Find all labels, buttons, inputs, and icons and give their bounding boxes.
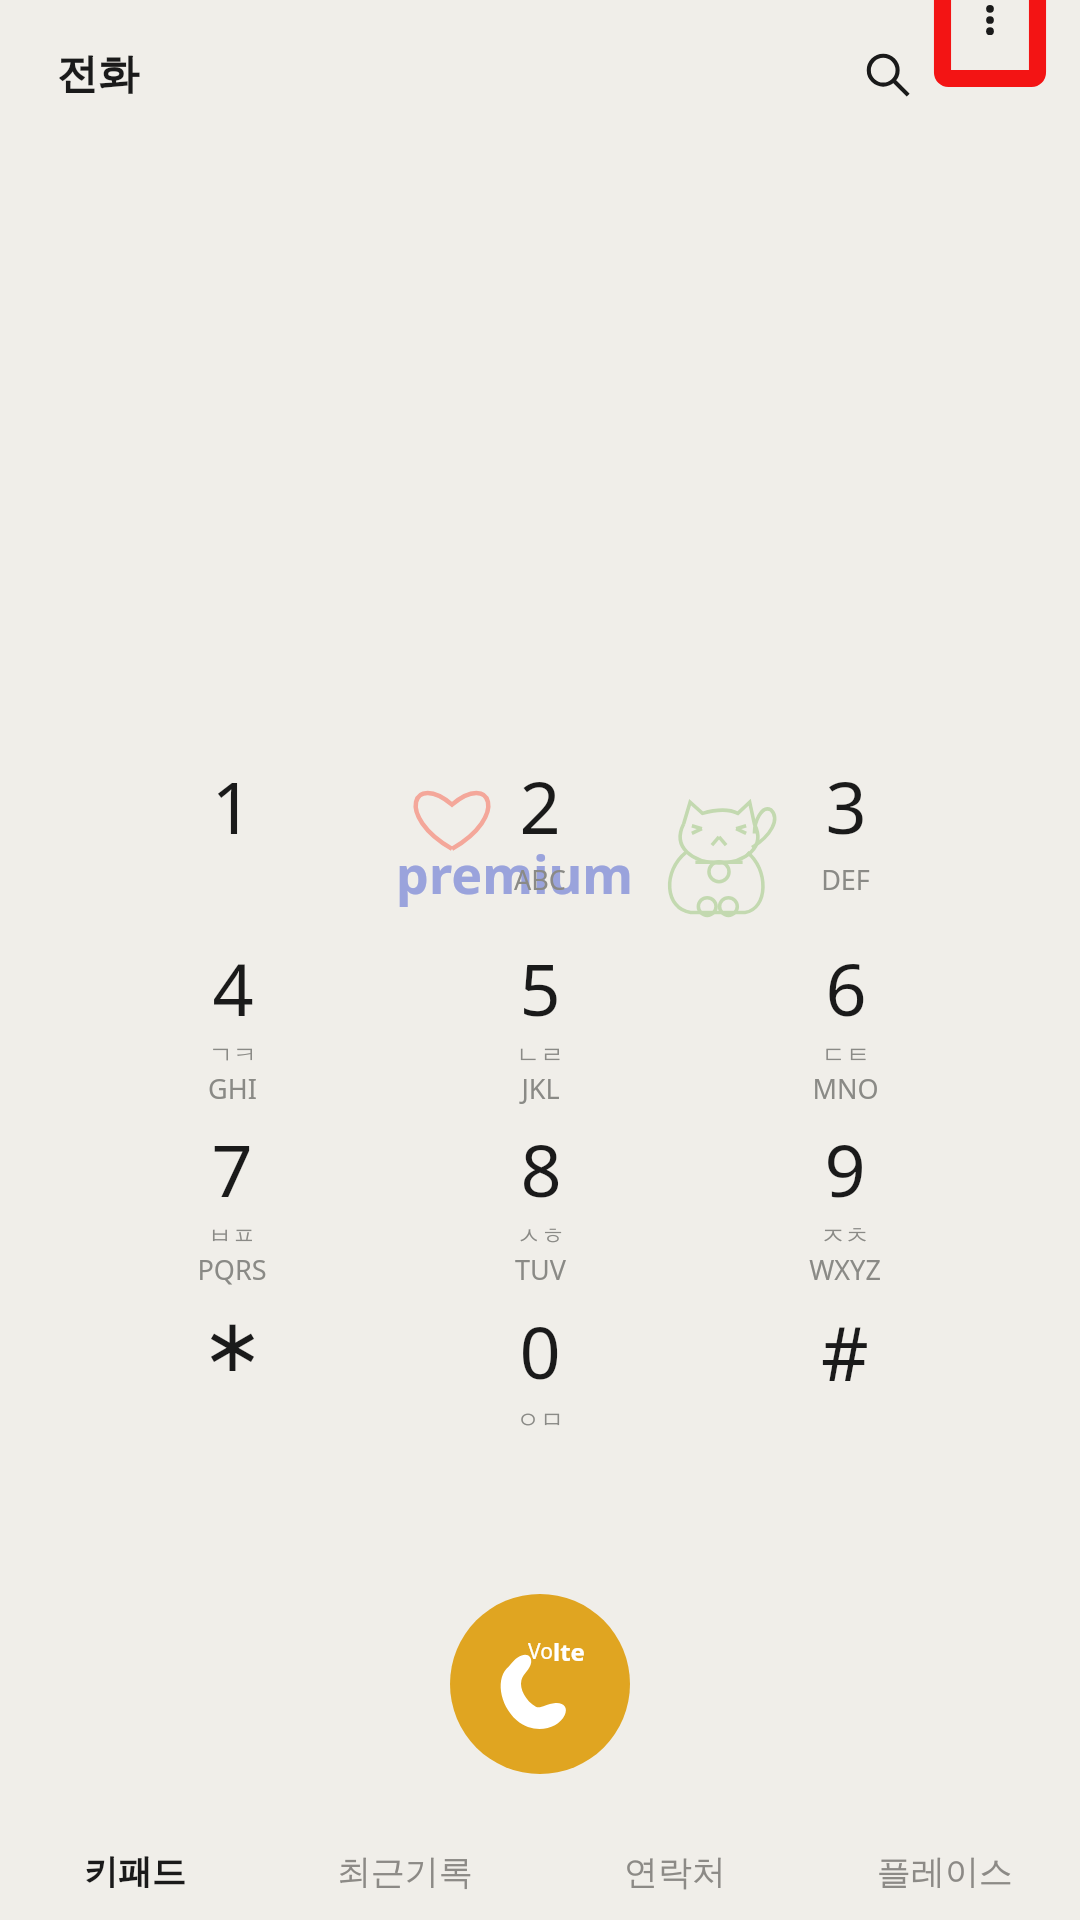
staticText: 2 — [519, 757, 561, 855]
staticText: ABC — [514, 861, 566, 898]
staticText: 최근기록 — [337, 1851, 473, 1894]
staticText: 전화 — [57, 49, 139, 101]
staticText: 3 — [825, 757, 867, 855]
staticText: ㄷㅌ — [822, 1040, 870, 1070]
staticText: lte — [553, 1635, 585, 1668]
staticText: 연락처 — [624, 1851, 726, 1894]
button[interactable]: 2 — [390, 757, 690, 933]
staticText: premium — [396, 838, 633, 909]
staticText: ㅂㅍ — [208, 1221, 256, 1251]
staticText: ㅈㅊ — [821, 1221, 869, 1251]
staticText: GHI — [208, 1070, 257, 1107]
staticText: # — [821, 1302, 869, 1403]
button[interactable]: 플레이스 — [810, 1825, 1080, 1920]
button[interactable]: 4 — [82, 939, 382, 1115]
button[interactable]: ∗ — [82, 1302, 382, 1478]
staticText: TUV — [515, 1251, 566, 1288]
button[interactable]: Search — [846, 33, 930, 117]
button[interactable]: 1 — [82, 757, 382, 933]
staticText: 4 — [212, 939, 254, 1037]
button[interactable]: 0 — [390, 1302, 690, 1478]
button[interactable]: Call — [450, 1594, 630, 1774]
staticText: 1 — [211, 757, 253, 855]
button[interactable]: 3 — [695, 757, 995, 933]
button[interactable]: 9 — [695, 1120, 995, 1296]
staticText: 0 — [519, 1302, 561, 1400]
staticText: 키패드 — [84, 1851, 186, 1894]
staticText: ㅅㅎ — [517, 1221, 565, 1251]
button[interactable]: 7 — [82, 1120, 382, 1296]
button[interactable]: 연락처 — [540, 1825, 810, 1920]
staticText: ㄱㅋ — [209, 1040, 257, 1070]
staticText: Vo — [528, 1637, 553, 1666]
staticText: MNO — [812, 1070, 879, 1107]
button[interactable]: # — [695, 1302, 995, 1478]
button[interactable]: 5 — [390, 939, 690, 1115]
button[interactable]: 최근기록 — [270, 1825, 540, 1920]
staticText: 7 — [211, 1120, 253, 1218]
staticText: JKL — [521, 1070, 560, 1107]
staticText: 9 — [824, 1120, 866, 1218]
staticText: ∗ — [201, 1302, 264, 1388]
staticText: DEF — [821, 861, 870, 898]
button[interactable]: 8 — [390, 1120, 690, 1296]
button[interactable]: 키패드 — [0, 1825, 270, 1920]
staticText: 5 — [519, 939, 561, 1037]
staticText: ㄴㄹ — [516, 1040, 564, 1070]
button[interactable]: 6 — [695, 939, 995, 1115]
staticText: ㅇㅁ — [516, 1405, 564, 1435]
button[interactable]: More options — [938, 0, 1042, 83]
staticText: PQRS — [197, 1251, 267, 1288]
staticText: 8 — [520, 1120, 562, 1218]
staticText: WXYZ — [809, 1251, 881, 1288]
staticText: 6 — [825, 939, 867, 1037]
staticText: 플레이스 — [877, 1851, 1013, 1894]
